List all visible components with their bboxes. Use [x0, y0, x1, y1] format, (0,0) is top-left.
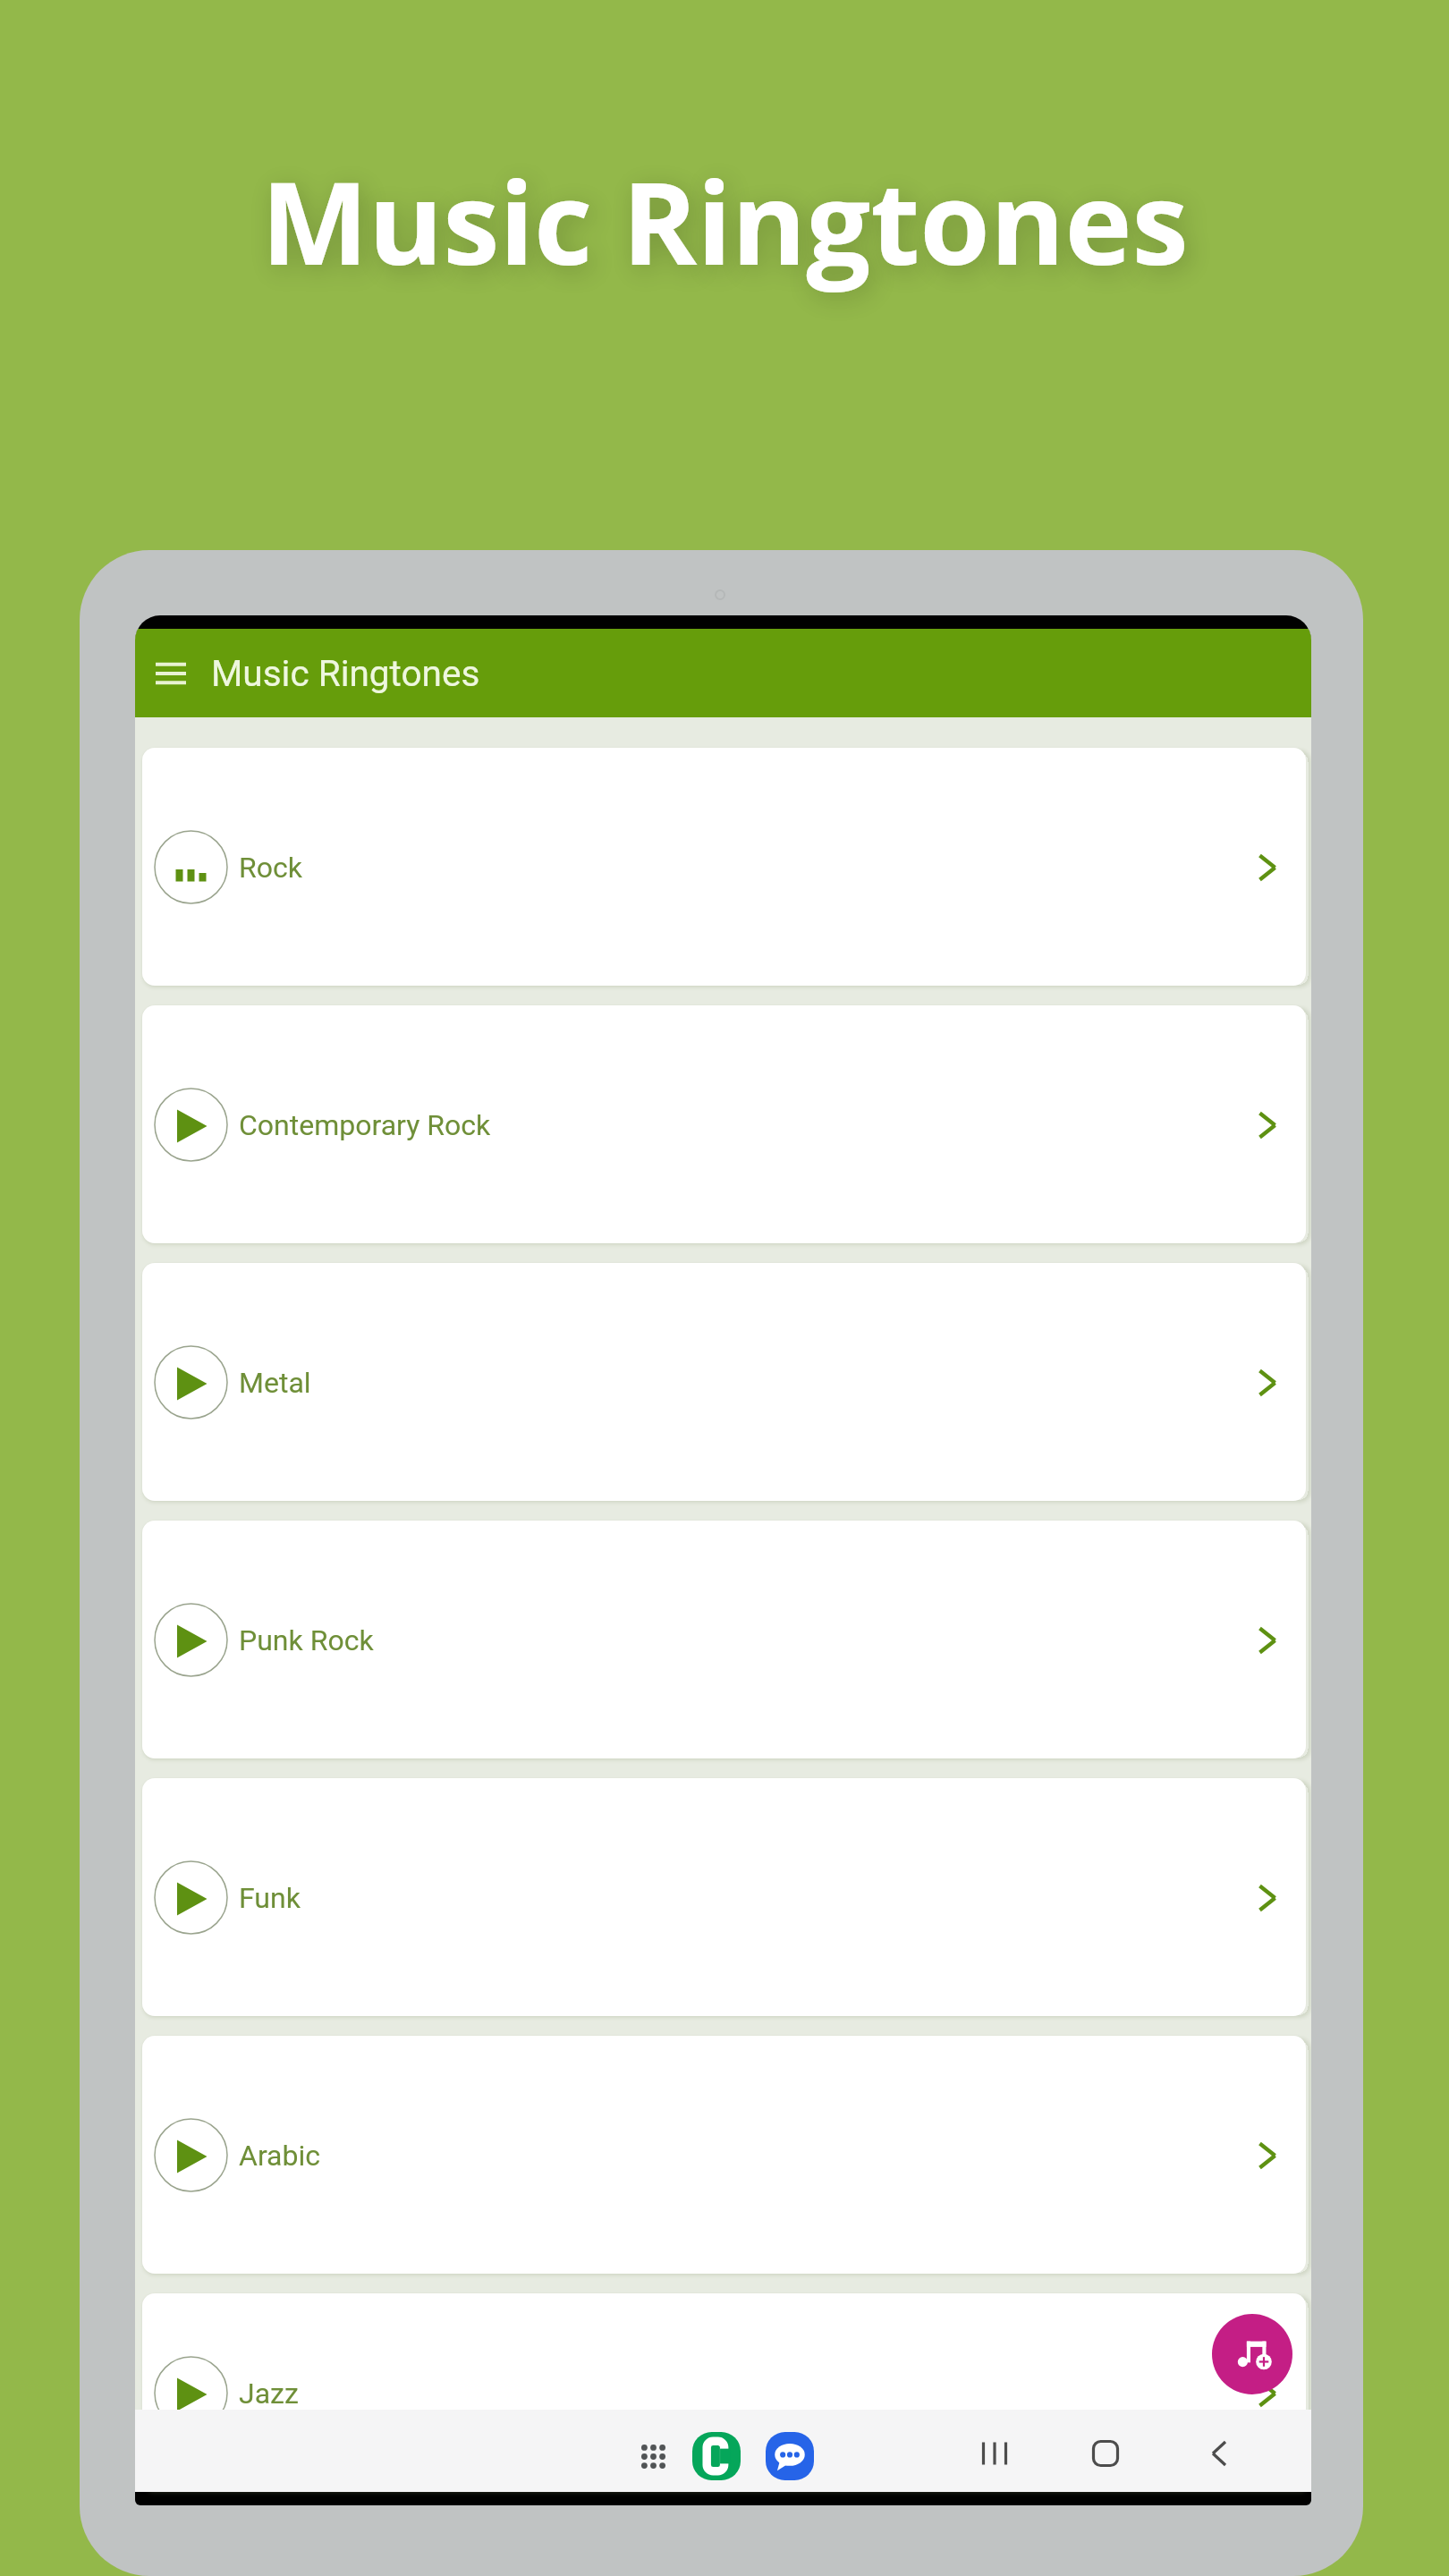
button[interactable]: Arabic [142, 2036, 1306, 2274]
button[interactable]: Recent apps [959, 2415, 1030, 2487]
button[interactable]: Messages [763, 2429, 817, 2483]
staticText: Jazz [239, 2377, 1240, 2411]
button[interactable]: Contemporary Rock [142, 1005, 1306, 1243]
button[interactable]: Metal [142, 1263, 1306, 1501]
button[interactable]: Open navigation menu [142, 645, 199, 702]
staticText: Music Ringtones [261, 143, 1189, 298]
staticText: Arabic [239, 2139, 1240, 2173]
staticText: Metal [239, 1366, 1240, 1400]
staticText: Punk Rock [239, 1623, 1240, 1657]
button[interactable]: Back [1184, 2415, 1256, 2487]
button[interactable]: Home [1070, 2415, 1141, 2487]
button[interactable]: Apps [623, 2426, 683, 2487]
button[interactable]: Jazz [142, 2293, 1306, 2492]
staticText: Contemporary Rock [239, 1108, 1240, 1142]
staticText: Funk [239, 1881, 1240, 1915]
staticText: Rock [239, 851, 1240, 885]
button[interactable]: Add ringtone [1212, 2314, 1292, 2394]
button[interactable]: Rock [142, 748, 1306, 986]
button[interactable]: Phone [690, 2429, 743, 2483]
staticText: Music Ringtones [211, 652, 480, 694]
button[interactable]: Punk Rock [142, 1521, 1306, 1758]
button[interactable]: Funk [142, 1778, 1306, 2016]
